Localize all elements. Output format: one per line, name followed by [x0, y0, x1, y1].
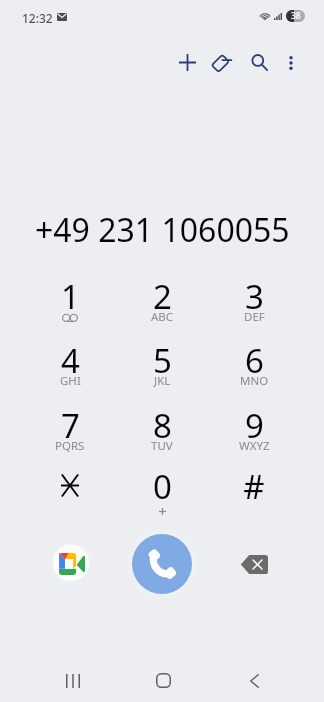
button[interactable]: [24, 464, 116, 526]
staticText: +49 231 1060055: [35, 208, 290, 252]
button[interactable]: Create label: [204, 46, 238, 80]
button[interactable]: 5: [116, 338, 208, 400]
button[interactable]: 3: [208, 274, 300, 336]
staticText: 8: [153, 403, 172, 441]
button[interactable]: 2: [116, 274, 208, 336]
staticText: ABC: [151, 309, 174, 325]
button[interactable]: 6: [208, 338, 300, 400]
staticText: DEF: [244, 309, 265, 325]
button[interactable]: Video call: [53, 545, 89, 581]
staticText: 4: [61, 338, 80, 376]
button[interactable]: 4: [24, 338, 116, 400]
staticText: 9: [245, 403, 264, 441]
staticText: MNO: [240, 373, 269, 389]
staticText: 12:32: [22, 10, 53, 26]
button[interactable]: Home: [141, 658, 186, 702]
button[interactable]: 7: [24, 403, 116, 465]
button[interactable]: 1: [24, 274, 116, 336]
staticText: WXYZ: [239, 438, 270, 454]
staticText: 7: [61, 403, 80, 441]
button[interactable]: #: [208, 464, 300, 526]
staticText: PQRS: [55, 438, 85, 454]
button[interactable]: Back: [232, 658, 277, 702]
button[interactable]: Recent apps: [50, 658, 95, 702]
staticText: JKL: [154, 373, 171, 389]
button[interactable]: Search: [242, 45, 276, 79]
button[interactable]: 0: [116, 464, 208, 526]
button[interactable]: 8: [116, 403, 208, 465]
button[interactable]: Call: [132, 534, 192, 594]
staticText: TUV: [151, 438, 173, 454]
button[interactable]: Delete: [228, 546, 280, 583]
staticText: 6: [245, 338, 264, 376]
staticText: 5: [153, 338, 172, 376]
button[interactable]: More options: [274, 46, 308, 80]
staticText: 38: [291, 10, 301, 22]
staticText: 1: [61, 274, 80, 312]
staticText: 0: [153, 464, 172, 502]
button[interactable]: Add contact: [170, 45, 204, 79]
staticText: #: [243, 464, 265, 502]
button[interactable]: 9: [208, 403, 300, 465]
staticText: 2: [153, 274, 172, 312]
staticText: GHI: [60, 373, 81, 389]
staticText: 3: [245, 274, 264, 312]
